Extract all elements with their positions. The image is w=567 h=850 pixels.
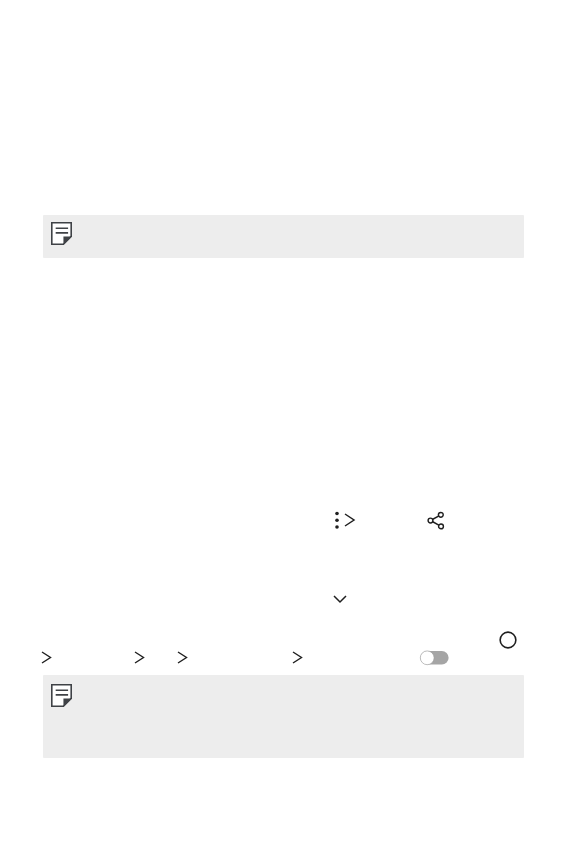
button[interactable]: Open section bbox=[176, 650, 189, 665]
button[interactable]: Expand entry bbox=[343, 511, 357, 529]
button[interactable]: Share bbox=[426, 508, 448, 530]
button[interactable]: More options bbox=[329, 508, 345, 533]
button[interactable] bbox=[43, 675, 524, 758]
button[interactable]: Open section bbox=[40, 650, 53, 665]
button[interactable]: Open section bbox=[291, 650, 304, 665]
button[interactable] bbox=[43, 215, 524, 258]
button[interactable]: Account bbox=[497, 629, 518, 650]
button[interactable]: Show more bbox=[331, 591, 349, 606]
button[interactable]: Open section bbox=[133, 650, 146, 665]
button[interactable]: Toggle setting bbox=[418, 648, 450, 667]
